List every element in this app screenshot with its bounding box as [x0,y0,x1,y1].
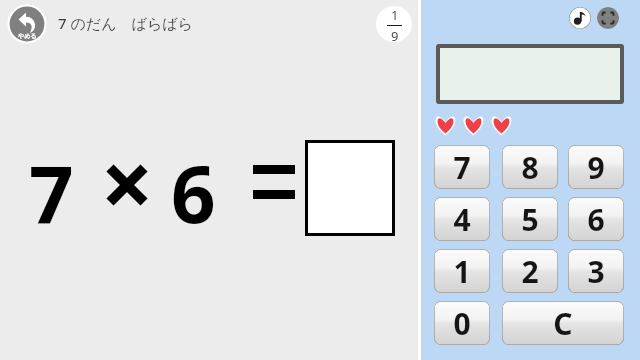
staticText: 4 [453,199,471,240]
staticText: 9 [587,147,605,188]
button[interactable]: Sound [569,7,591,29]
staticText: 0 [453,303,471,344]
button[interactable]: やめる [7,4,47,44]
button[interactable]: Progress 1 of 9 [376,6,412,42]
button[interactable]: 1 [434,249,490,293]
staticText: 7 [29,140,74,246]
staticText: やめる [18,32,37,40]
staticText: 6 [171,140,216,246]
staticText: C [553,303,573,344]
button[interactable]: 3 [568,249,624,293]
button[interactable]: 2 [502,249,558,293]
button[interactable]: Fullscreen [597,7,619,29]
staticText: 7 のだん ばらばら [58,13,193,33]
button[interactable]: 7 [434,145,490,189]
button[interactable]: 4 [434,197,490,241]
staticText: 5 [521,199,539,240]
staticText: 8 [521,147,539,188]
button[interactable]: 6 [568,197,624,241]
staticText: 6 [587,199,605,240]
staticText: 3 [587,251,605,292]
staticText: 2 [521,251,539,292]
staticText: 1 [453,251,471,292]
button[interactable]: C [502,301,624,345]
button[interactable]: 5 [502,197,558,241]
button[interactable]: 9 [568,145,624,189]
staticText: 1 [391,6,399,24]
staticText: 9 [391,27,399,42]
staticText: 7 [453,147,471,188]
button[interactable]: 0 [434,301,490,345]
button[interactable]: 8 [502,145,558,189]
